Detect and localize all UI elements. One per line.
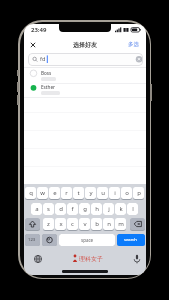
staticText: f <box>71 205 74 213</box>
staticText: x <box>59 220 63 228</box>
staticText: m <box>118 220 124 228</box>
button[interactable]: Esther <box>24 83 146 98</box>
button[interactable]: z <box>43 218 54 230</box>
staticText: 理科女子 <box>79 255 103 263</box>
button[interactable]: j <box>103 203 114 215</box>
button[interactable] <box>27 39 39 51</box>
staticText: d <box>59 205 63 213</box>
staticText: r <box>65 189 68 197</box>
staticText: search <box>124 237 137 243</box>
staticText: space <box>81 237 94 243</box>
button[interactable]: q <box>25 187 36 199</box>
button[interactable]: v <box>79 218 90 230</box>
button[interactable]: d <box>55 203 66 215</box>
staticText: o <box>125 189 129 197</box>
staticText: u <box>101 189 105 197</box>
staticText: p <box>137 189 141 197</box>
staticText: n <box>107 220 111 228</box>
staticText: e <box>53 189 57 197</box>
button[interactable]: 多选 <box>127 40 143 50</box>
staticText: Esther <box>41 84 56 90</box>
button[interactable]: u <box>97 187 108 199</box>
button[interactable]: h <box>91 203 102 215</box>
staticText: fd <box>40 55 46 62</box>
button[interactable]: s <box>43 203 54 215</box>
button[interactable]: l <box>127 203 138 215</box>
staticText: t <box>77 189 80 197</box>
staticText: q <box>29 189 33 197</box>
staticText: y <box>89 189 93 197</box>
button[interactable]: search <box>117 234 145 246</box>
staticText: h <box>95 205 99 213</box>
button[interactable]: r <box>61 187 72 199</box>
button[interactable]: w <box>37 187 48 199</box>
staticText: 多选 <box>128 41 139 48</box>
staticText: b <box>95 220 99 228</box>
staticText: i <box>114 189 116 197</box>
button[interactable]: c <box>67 218 78 230</box>
button[interactable]: b <box>91 218 102 230</box>
button[interactable]: t <box>73 187 84 199</box>
button[interactable]: k <box>115 203 126 215</box>
button[interactable]: fd <box>28 53 143 66</box>
staticText: Boss <box>41 70 52 76</box>
staticText: 123 <box>28 237 36 243</box>
staticText: v <box>83 220 87 228</box>
staticText: j <box>108 205 110 213</box>
button[interactable]: a <box>31 203 42 215</box>
button[interactable]: n <box>103 218 114 230</box>
staticText: k <box>119 205 123 213</box>
staticText: 选择好友 <box>73 41 97 49</box>
button[interactable]: p <box>133 187 144 199</box>
button[interactable] <box>130 218 145 230</box>
staticText: l <box>132 205 134 213</box>
staticText: s <box>47 205 50 213</box>
button[interactable]: y <box>85 187 96 199</box>
button[interactable]: m <box>115 218 126 230</box>
button[interactable]: i <box>109 187 120 199</box>
staticText: g <box>83 205 87 213</box>
button[interactable]: g <box>79 203 90 215</box>
staticText: 23:49 <box>31 26 47 34</box>
button[interactable] <box>42 234 57 246</box>
button[interactable]: x <box>55 218 66 230</box>
staticText: z <box>47 220 50 228</box>
button[interactable]: space <box>59 234 115 246</box>
staticText: c <box>71 220 74 228</box>
staticText: w <box>40 189 45 197</box>
button[interactable]: e <box>49 187 60 199</box>
staticText: a <box>35 205 39 213</box>
button[interactable] <box>25 218 40 230</box>
button[interactable]: Boss <box>24 68 146 83</box>
button[interactable]: 123 <box>25 234 40 246</box>
button[interactable]: o <box>121 187 132 199</box>
button[interactable]: f <box>67 203 78 215</box>
